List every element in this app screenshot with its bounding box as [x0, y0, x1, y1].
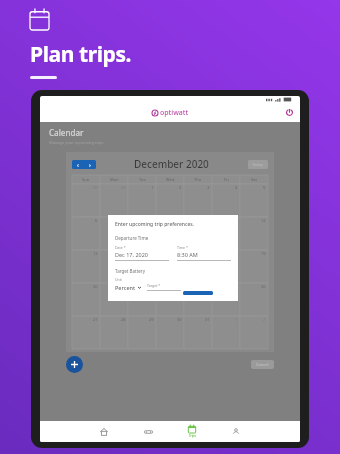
button[interactable]: Home	[91, 421, 117, 442]
staticText: 2	[179, 185, 182, 190]
staticText: 4	[235, 185, 238, 190]
button[interactable]: 1	[128, 184, 156, 217]
staticText: ‹	[77, 161, 79, 169]
staticText: Fri	[224, 177, 229, 182]
staticText: 6	[95, 218, 98, 223]
button[interactable]: 7	[100, 217, 128, 250]
button[interactable]: 14	[100, 250, 128, 283]
button[interactable]: Calendar	[179, 421, 205, 442]
staticText: Mon	[110, 177, 119, 182]
button[interactable]: 24	[184, 283, 212, 316]
button[interactable]: 21	[100, 283, 128, 316]
button[interactable]: 17	[184, 250, 212, 283]
button[interactable]: 9	[156, 217, 184, 250]
staticText: Cancel	[256, 362, 269, 367]
button[interactable]: Cancel	[251, 360, 274, 369]
staticText: 12	[261, 218, 266, 223]
staticText: Tue	[139, 177, 146, 182]
staticText: 2	[263, 317, 266, 322]
staticText: Dec 17, 2020	[115, 251, 148, 258]
staticText: Time *	[177, 245, 188, 250]
button[interactable]: Time *	[177, 245, 231, 261]
button[interactable]: Today	[248, 160, 268, 169]
staticText: 29	[93, 185, 98, 190]
staticText: Calendar	[49, 127, 84, 138]
staticText: Unit	[115, 277, 122, 282]
staticText: Thu	[194, 177, 202, 182]
button[interactable]: Next month	[84, 160, 96, 169]
button[interactable]: 4	[212, 184, 240, 217]
staticText: 20	[93, 284, 98, 289]
button[interactable]: 10	[184, 217, 212, 250]
staticText: 1	[151, 185, 154, 190]
staticText: 3	[207, 185, 210, 190]
button[interactable]: Submit	[183, 291, 213, 295]
staticText: ›	[89, 161, 91, 169]
button[interactable]: 2	[156, 184, 184, 217]
staticText: 13	[93, 251, 98, 256]
staticText: Percent	[115, 284, 136, 291]
staticText: Manage your upcoming trips	[49, 140, 104, 145]
button[interactable]: 23	[156, 283, 184, 316]
button[interactable]: 25	[212, 283, 240, 316]
staticText: Sun	[82, 177, 90, 182]
staticText: 19	[261, 251, 266, 256]
button[interactable]: Add trip	[66, 356, 83, 373]
staticText: Today	[252, 162, 264, 167]
staticText: 28	[121, 317, 126, 322]
staticText: 21	[121, 284, 126, 289]
button[interactable]: 11	[212, 217, 240, 250]
staticText: Target *	[147, 283, 161, 288]
staticText: optiwatt	[160, 108, 189, 118]
button[interactable]: Date *	[115, 245, 169, 261]
button[interactable]: Devices	[135, 421, 161, 442]
button[interactable]: 8	[128, 217, 156, 250]
staticText: 26	[261, 284, 266, 289]
staticText: 22	[149, 284, 154, 289]
button[interactable]: 30	[100, 184, 128, 217]
staticText: Plan trips.	[30, 40, 132, 69]
button[interactable]: Percent	[115, 284, 141, 291]
button[interactable]: 15	[128, 250, 156, 283]
button[interactable]: 3	[184, 184, 212, 217]
staticText: 29	[149, 317, 154, 322]
staticText: 27	[93, 317, 98, 322]
button[interactable]: Profile	[223, 421, 249, 442]
button[interactable]: 16	[156, 250, 184, 283]
staticText: 31	[205, 317, 210, 322]
button[interactable]: 18	[212, 250, 240, 283]
staticText: Trips	[189, 434, 196, 438]
button[interactable]: Previous month	[72, 160, 84, 169]
staticText: Sat	[251, 177, 257, 182]
staticText: 8:30 AM	[177, 251, 198, 258]
button[interactable]: Log out	[284, 107, 295, 118]
staticText: Departure Time	[115, 235, 149, 241]
staticText: 16	[177, 251, 182, 256]
button[interactable]: 22	[128, 283, 156, 316]
staticText: Wed	[166, 177, 175, 182]
